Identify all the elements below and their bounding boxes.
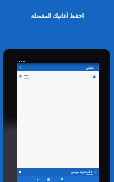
- staticText: لا أحد غيرك يفهمني: [71, 170, 93, 174]
- other: Expand: [94, 171, 97, 174]
- button[interactable]: Menu: [17, 63, 99, 71]
- button[interactable]: Download: [17, 71, 99, 82]
- button[interactable]: Play: [17, 168, 99, 176]
- staticText: احفظ أغانيك المفضلة: [31, 12, 84, 20]
- staticText: مكتبتي: [86, 66, 94, 69]
- button[interactable]: Back: [36, 178, 39, 181]
- other: Download: [92, 75, 96, 79]
- button[interactable]: Home: [47, 178, 50, 181]
- other: Menu: [19, 66, 22, 69]
